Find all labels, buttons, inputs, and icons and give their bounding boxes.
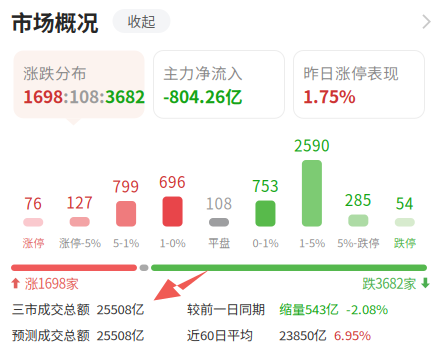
staticText: 6.95%: [334, 325, 371, 344]
button[interactable]: 涨跌分布: [13, 50, 144, 125]
button[interactable]: 昨日涨停表现: [293, 50, 424, 118]
staticText: 25508亿: [96, 299, 144, 318]
staticText: -2.08%: [346, 299, 388, 318]
staticText: 较前一日同期: [187, 299, 265, 318]
staticText: 跌3682家: [362, 273, 416, 293]
staticText: 涨跌分布: [23, 61, 87, 84]
staticText: 23850亿: [279, 325, 327, 344]
staticText: 25508亿: [96, 325, 144, 344]
button[interactable]: 展开市场概况: [416, 8, 437, 36]
staticText: 近60日平均: [187, 325, 253, 344]
staticText: 0-1%: [252, 234, 278, 250]
staticText: 涨停-5%: [59, 234, 101, 250]
button[interactable]: 主力净流入: [153, 50, 284, 118]
staticText: 预测成交总额: [11, 325, 89, 344]
staticText: 昨日涨停表现: [303, 61, 399, 84]
staticText: -804.26亿: [163, 83, 242, 108]
staticText: 127: [66, 191, 93, 213]
staticText: 1-0%: [160, 234, 186, 250]
staticText: 5-1%: [113, 234, 139, 250]
staticText: 市场概况: [10, 5, 98, 37]
staticText: 54: [396, 192, 414, 214]
staticText: 三市成交总额: [11, 299, 89, 318]
staticText: :108:: [63, 83, 105, 108]
staticText: 跌停: [394, 234, 416, 250]
staticText: 696: [159, 170, 186, 192]
staticText: 1.75%: [303, 83, 356, 108]
staticText: 285: [345, 188, 372, 210]
staticText: 76: [24, 192, 42, 214]
staticText: 缩量543亿: [279, 299, 339, 318]
staticText: 1-5%: [299, 234, 325, 250]
staticText: 2590: [294, 134, 330, 156]
staticText: 799: [113, 175, 140, 197]
staticText: 108: [205, 192, 232, 214]
staticText: 1698: [23, 83, 63, 108]
staticText: 涨1698家: [25, 273, 79, 293]
button[interactable]: 收起: [112, 9, 170, 33]
staticText: 5%-跌停: [337, 234, 379, 250]
staticText: 3682: [105, 83, 145, 108]
staticText: 涨停: [22, 234, 44, 250]
staticText: 主力净流入: [163, 61, 243, 84]
staticText: 平盘: [208, 234, 230, 250]
staticText: 收起: [127, 11, 155, 31]
staticText: 753: [252, 174, 279, 196]
